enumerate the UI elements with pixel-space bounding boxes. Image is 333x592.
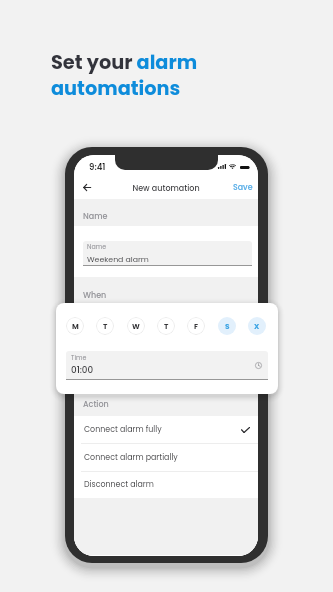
button[interactable]: Connect alarm partially [74,447,258,474]
staticText: Weekend alarm [87,254,149,265]
staticText: New automation [74,183,258,194]
staticText: S [225,321,230,331]
staticText: Set your alarm automations [51,49,198,101]
staticText: Name [87,242,107,251]
staticText: Connect alarm partially [84,452,178,463]
button[interactable]: Save [232,180,254,195]
staticText: 9:41 [89,161,106,173]
staticText: W [132,321,140,331]
button[interactable]: Connect alarm fully [74,419,258,446]
staticText: When [83,290,107,301]
staticText: Connect alarm fully [84,424,162,435]
staticText: T [164,321,169,331]
staticText: M [72,321,79,331]
staticText: Time [71,353,87,362]
staticText: Disconnect alarm [84,479,154,490]
button[interactable]: F [187,317,205,335]
button[interactable]: T [96,317,114,335]
staticText: 01:00 [71,364,94,376]
staticText: Action [83,399,109,410]
staticText: Name [83,211,108,222]
staticText: F [194,321,199,331]
button[interactable]: T [157,317,175,335]
button[interactable]: X [248,317,266,335]
staticText: Save [233,182,253,193]
button[interactable]: Disconnect alarm [74,474,258,501]
button[interactable]: M [66,317,84,335]
staticText: T [103,321,108,331]
button[interactable]: S [218,317,236,335]
button[interactable]: W [127,317,145,335]
staticText: X [254,321,260,331]
button[interactable]: Back [78,178,96,196]
